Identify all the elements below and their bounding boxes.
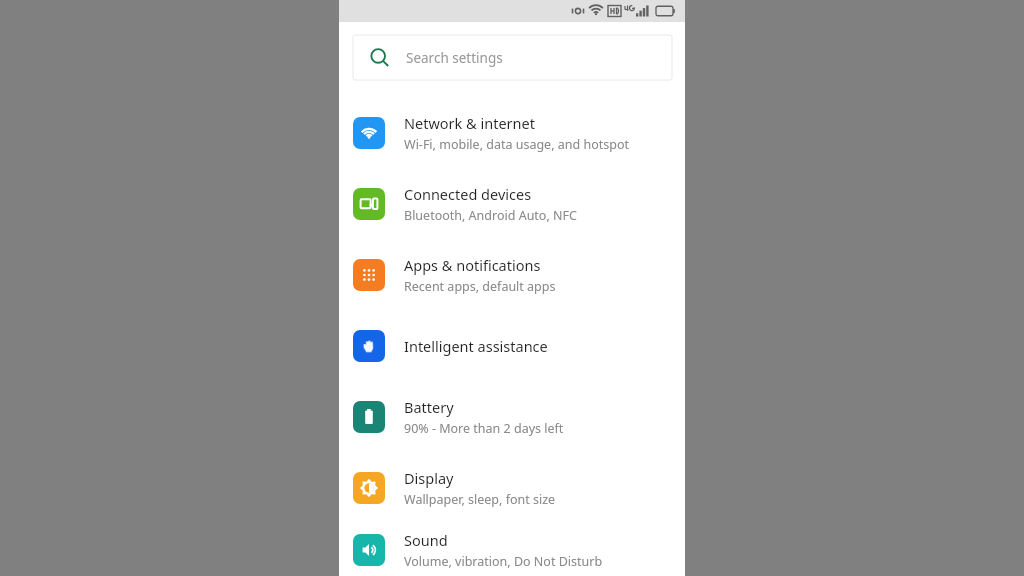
button[interactable]: Sound: [339, 523, 685, 576]
staticText: Recent apps, default apps: [404, 278, 556, 295]
button[interactable]: Search: [353, 35, 672, 80]
button[interactable]: Display: [339, 452, 685, 523]
staticText: 90% - More than 2 days left: [404, 420, 564, 437]
staticText: Network & internet: [404, 113, 535, 133]
staticText: Intelligent assistance: [404, 336, 548, 356]
staticText: Apps & notifications: [404, 255, 541, 275]
other: Search: [370, 48, 389, 67]
button[interactable]: Network & internet: [339, 97, 685, 168]
staticText: Search settings: [406, 49, 503, 67]
button[interactable]: Intelligent assistance: [339, 310, 685, 381]
button[interactable]: Apps & notifications: [339, 239, 685, 310]
button[interactable]: Battery: [339, 381, 685, 452]
staticText: Bluetooth, Android Auto, NFC: [404, 207, 577, 224]
staticText: Display: [404, 468, 454, 488]
staticText: Connected devices: [404, 184, 532, 204]
staticText: Battery: [404, 397, 454, 417]
staticText: Wallpaper, sleep, font size: [404, 491, 556, 508]
staticText: Sound: [404, 530, 448, 550]
button[interactable]: Connected devices: [339, 168, 685, 239]
staticText: Wi-Fi, mobile, data usage, and hotspot: [404, 136, 629, 153]
staticText: Volume, vibration, Do Not Disturb: [404, 553, 603, 570]
